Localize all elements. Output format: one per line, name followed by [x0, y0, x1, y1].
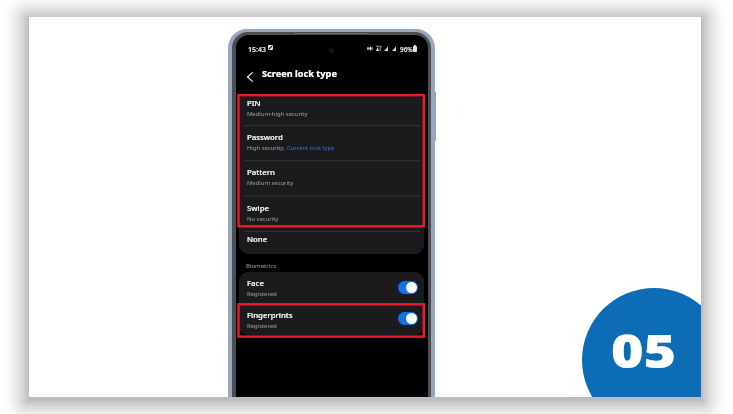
button[interactable]: PIN: [239, 94, 424, 125]
staticText: Pattern: [247, 167, 275, 178]
staticText: Current lock type: [287, 144, 335, 152]
button[interactable]: Fingerprints: [239, 304, 424, 335]
staticText: PIN: [247, 98, 261, 109]
button[interactable]: Back: [242, 69, 258, 85]
staticText: 96%: [400, 45, 413, 54]
staticText: None: [247, 234, 268, 245]
staticText: Biometrics: [246, 262, 277, 270]
button[interactable]: None: [239, 228, 424, 251]
button[interactable]: Password: [239, 125, 424, 160]
staticText: Screen lock type: [262, 67, 337, 80]
staticText: Swipe: [247, 203, 269, 214]
button[interactable]: Swipe: [239, 196, 424, 231]
staticText: Medium security: [247, 179, 294, 187]
staticText: Medium-high security: [247, 110, 308, 118]
staticText: Face: [247, 278, 264, 289]
staticText: No security: [247, 215, 279, 223]
staticText: Password: [247, 132, 283, 143]
staticText: Fingerprints: [247, 310, 293, 321]
button[interactable]: Pattern: [239, 160, 424, 195]
staticText: 15:43: [248, 45, 266, 55]
button[interactable]: Face: [239, 272, 424, 304]
staticText: Registered: [247, 290, 277, 298]
staticText: Registered: [247, 322, 277, 330]
staticText: 05: [611, 319, 676, 382]
staticText: High security,: [247, 144, 287, 152]
